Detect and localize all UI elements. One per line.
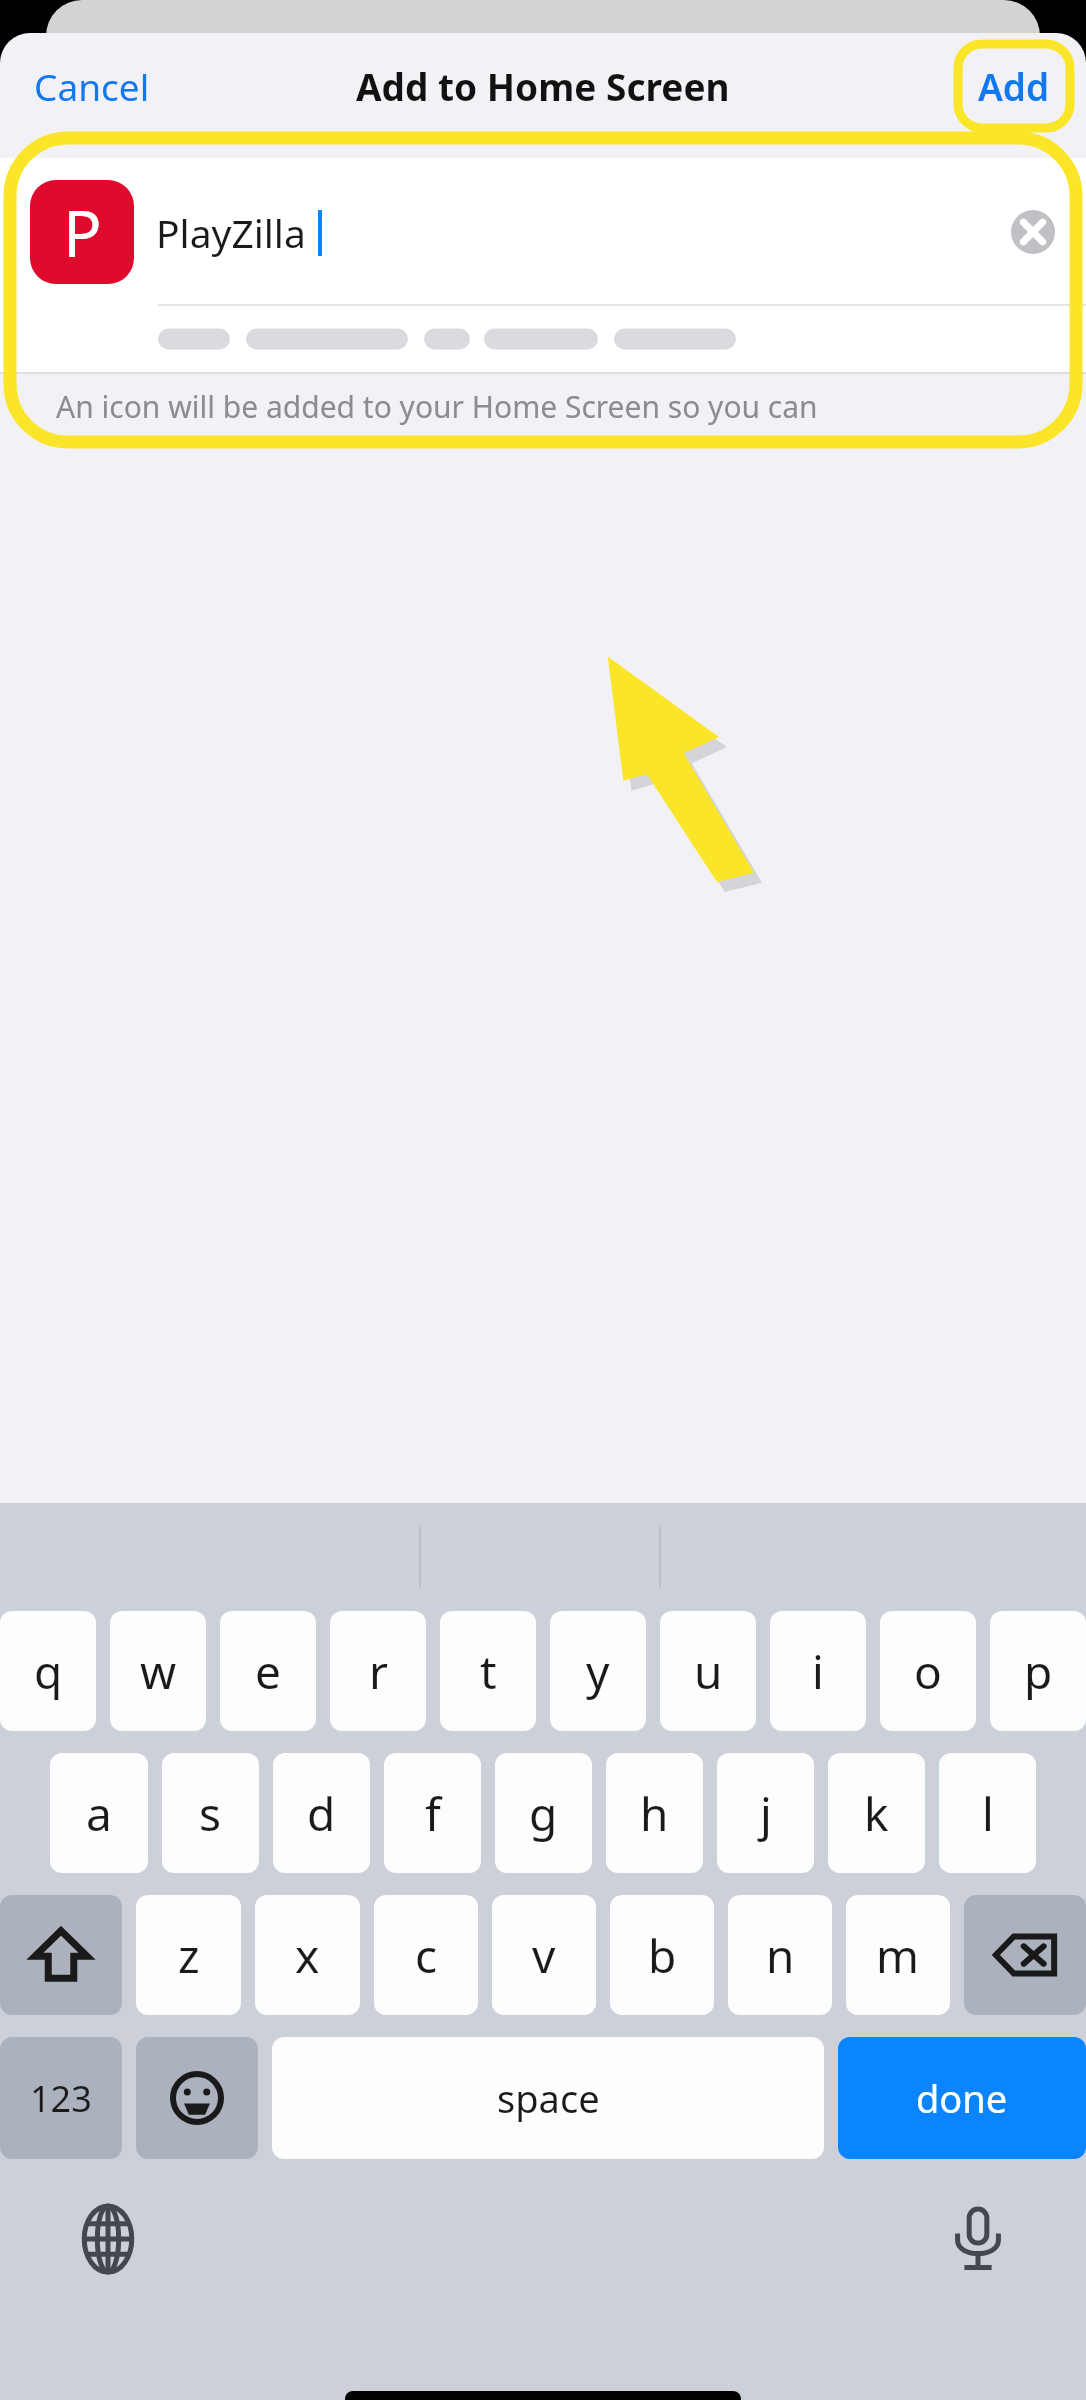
button[interactable]: a bbox=[50, 1753, 148, 1873]
staticText: t bbox=[480, 1640, 497, 1703]
button[interactable]: p bbox=[990, 1611, 1086, 1731]
staticText: Add bbox=[978, 61, 1050, 111]
button[interactable]: h bbox=[606, 1753, 703, 1873]
staticText: k bbox=[864, 1782, 889, 1845]
staticText: quickly access this website. bbox=[56, 431, 438, 440]
button[interactable]: l bbox=[939, 1753, 1036, 1873]
staticText: Cancel bbox=[34, 61, 150, 111]
button[interactable]: g bbox=[495, 1753, 592, 1873]
button[interactable]: q bbox=[0, 1611, 96, 1731]
button[interactable]: u bbox=[660, 1611, 756, 1731]
button[interactable]: i bbox=[770, 1611, 866, 1731]
button[interactable]: Website icon bbox=[30, 180, 134, 284]
staticText: PlayZilla bbox=[156, 206, 306, 259]
staticText: q bbox=[34, 1640, 63, 1703]
button[interactable]: Shift bbox=[0, 1895, 122, 2015]
staticText: r bbox=[369, 1640, 388, 1703]
staticText: d bbox=[307, 1782, 336, 1845]
staticText: h bbox=[640, 1782, 669, 1845]
staticText: done bbox=[916, 2072, 1008, 2124]
button[interactable]: Cancel bbox=[14, 49, 170, 123]
staticText: c bbox=[415, 1924, 438, 1987]
button[interactable]: c bbox=[374, 1895, 478, 2015]
button[interactable]: Dictate bbox=[932, 2193, 1024, 2285]
button[interactable]: b bbox=[610, 1895, 714, 2015]
staticText: l bbox=[982, 1782, 994, 1845]
staticText: 123 bbox=[30, 2074, 92, 2123]
staticText: Add to Home Screen bbox=[356, 61, 730, 111]
button[interactable]: Change keyboard language bbox=[62, 2193, 154, 2285]
button[interactable]: Backspace bbox=[964, 1895, 1086, 2015]
staticText: p bbox=[1024, 1640, 1053, 1703]
staticText: x bbox=[295, 1924, 320, 1987]
staticText: b bbox=[648, 1924, 677, 1987]
button[interactable]: PlayZilla bbox=[156, 206, 994, 259]
button[interactable]: m bbox=[846, 1895, 950, 2015]
button[interactable]: d bbox=[273, 1753, 370, 1873]
staticText: w bbox=[140, 1640, 177, 1703]
staticText: P bbox=[63, 189, 102, 276]
staticText: v bbox=[532, 1924, 556, 1987]
staticText: j bbox=[760, 1782, 772, 1845]
button[interactable]: e bbox=[220, 1611, 316, 1731]
button[interactable]: r bbox=[330, 1611, 426, 1731]
button[interactable]: Clear text bbox=[994, 193, 1072, 271]
staticText: m bbox=[876, 1924, 920, 1987]
button[interactable]: space bbox=[272, 2037, 824, 2159]
button[interactable]: Add bbox=[958, 44, 1070, 128]
staticText: space bbox=[497, 2072, 600, 2124]
button[interactable]: done bbox=[838, 2037, 1086, 2159]
staticText: f bbox=[425, 1782, 441, 1845]
button[interactable]: x bbox=[255, 1895, 360, 2015]
button[interactable]: v bbox=[492, 1895, 596, 2015]
staticText: u bbox=[694, 1640, 723, 1703]
button[interactable]: n bbox=[728, 1895, 832, 2015]
staticText: y bbox=[586, 1640, 610, 1703]
button[interactable]: z bbox=[136, 1895, 241, 2015]
staticText: n bbox=[766, 1924, 795, 1987]
staticText: i bbox=[812, 1640, 824, 1703]
staticText: An icon will be added to your Home Scree… bbox=[56, 386, 818, 427]
button[interactable]: 123 bbox=[0, 2037, 122, 2159]
staticText: o bbox=[914, 1640, 942, 1703]
button[interactable]: Emoji bbox=[136, 2037, 258, 2159]
button[interactable]: y bbox=[550, 1611, 646, 1731]
staticText: s bbox=[199, 1782, 222, 1845]
button[interactable]: j bbox=[717, 1753, 814, 1873]
staticText: e bbox=[255, 1640, 281, 1703]
button[interactable]: s bbox=[162, 1753, 259, 1873]
button[interactable]: o bbox=[880, 1611, 976, 1731]
button[interactable]: w bbox=[110, 1611, 206, 1731]
staticText: z bbox=[178, 1924, 200, 1987]
button[interactable]: f bbox=[384, 1753, 481, 1873]
button[interactable]: t bbox=[440, 1611, 536, 1731]
staticText: g bbox=[529, 1782, 558, 1845]
staticText: a bbox=[86, 1782, 112, 1845]
button[interactable]: k bbox=[828, 1753, 925, 1873]
